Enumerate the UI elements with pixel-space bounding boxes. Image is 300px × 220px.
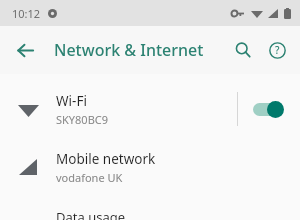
staticText: SKY80BC9: [56, 112, 109, 127]
button[interactable]: Toggle Wi-Fi: [238, 80, 300, 138]
staticText: ?: [275, 43, 280, 57]
button[interactable]: Mobile network: [0, 138, 300, 196]
staticText: 10:12: [12, 6, 41, 21]
button[interactable]: Back: [8, 33, 42, 67]
staticText: Mobile network: [56, 150, 156, 168]
staticText: Network & Internet: [54, 39, 204, 61]
button[interactable]: Help: [260, 33, 294, 67]
button[interactable]: Search: [226, 33, 260, 67]
staticText: Data usage: [56, 208, 126, 220]
button[interactable]: Wi-Fi: [0, 80, 300, 138]
staticText: vodafone UK: [56, 170, 123, 185]
staticText: Wi-Fi: [56, 92, 87, 110]
button[interactable]: Data usage: [0, 196, 300, 220]
